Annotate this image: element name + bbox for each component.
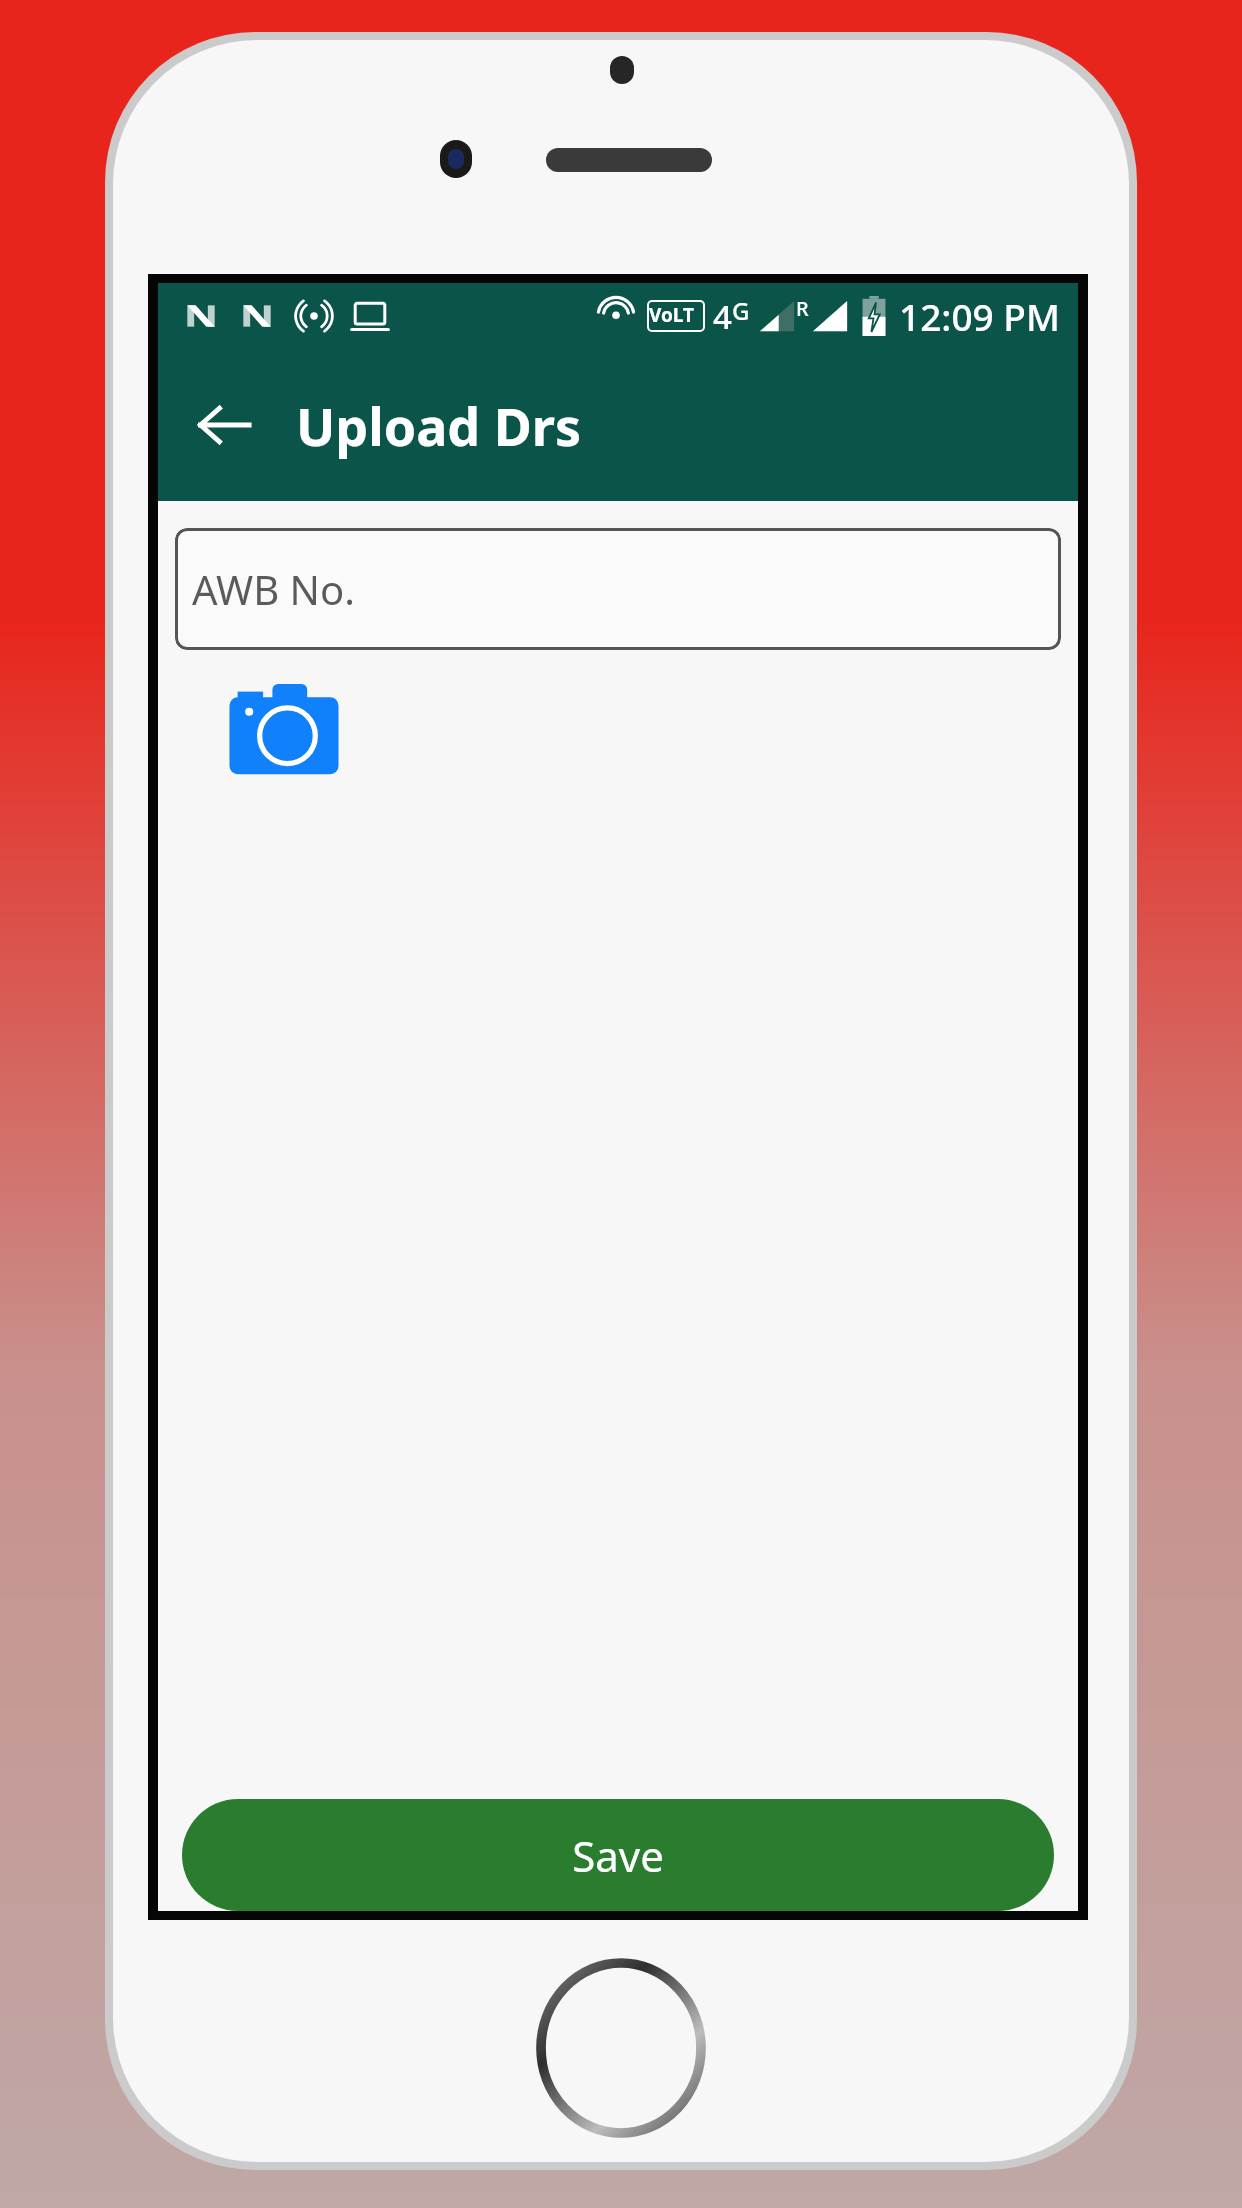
staticText: 12:09 PM [899,291,1060,341]
staticText: G [732,294,750,327]
staticText: 4 [713,294,732,339]
staticText: Upload Drs [296,390,582,461]
button[interactable]: Take photo [226,682,342,778]
button[interactable]: Save [182,1799,1054,1911]
staticText: Save [572,1827,664,1884]
staticText: R [796,295,809,322]
staticText: AWB No. [192,562,355,616]
button[interactable]: AWB No. [175,528,1061,650]
button[interactable]: Back [184,385,264,465]
staticText: VoLTE [649,302,703,330]
